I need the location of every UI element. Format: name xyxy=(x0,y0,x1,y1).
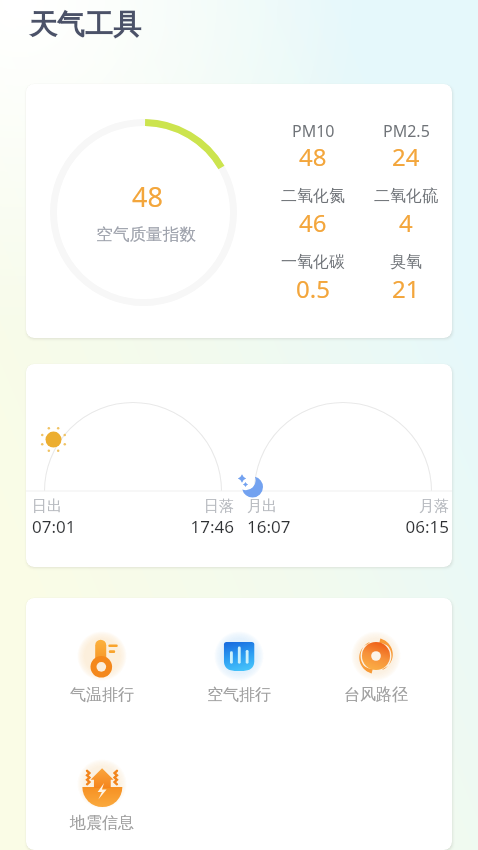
staticText: 48 xyxy=(132,178,163,215)
staticText: 16:07 xyxy=(247,515,348,538)
staticText: 日落 xyxy=(133,497,234,516)
staticText: 臭氧 xyxy=(390,252,422,272)
staticText: 月出 xyxy=(247,497,348,516)
button[interactable]: 台风路径 xyxy=(307,633,444,705)
staticText: 46 xyxy=(299,206,327,239)
staticText: 地震信息 xyxy=(70,813,134,833)
staticText: 06:15 xyxy=(348,515,449,538)
staticText: PM10 xyxy=(292,120,335,142)
staticText: 二氧化硫 xyxy=(374,186,438,206)
staticText: 天气工具 xyxy=(29,7,141,42)
staticText: 21 xyxy=(392,272,420,305)
button[interactable]: 地震信息 xyxy=(34,761,170,833)
staticText: 4 xyxy=(399,206,413,239)
staticText: PM2.5 xyxy=(383,120,430,142)
staticText: 空气排行 xyxy=(207,685,271,705)
button[interactable]: 空气排行 xyxy=(170,633,307,705)
staticText: 48 xyxy=(299,140,327,173)
staticText: 日出 xyxy=(32,497,133,516)
staticText: 一氧化碳 xyxy=(281,252,345,272)
button[interactable]: 气温排行 xyxy=(34,633,170,705)
staticText: 24 xyxy=(392,140,420,173)
staticText: 07:01 xyxy=(32,515,133,538)
staticText: 台风路径 xyxy=(344,685,408,705)
staticText: 17:46 xyxy=(133,515,234,538)
staticText: 二氧化氮 xyxy=(281,186,345,206)
staticText: 空气质量指数 xyxy=(96,224,197,245)
staticText: 气温排行 xyxy=(70,685,134,705)
staticText: 月落 xyxy=(348,497,449,516)
staticText: 0.5 xyxy=(296,272,330,305)
